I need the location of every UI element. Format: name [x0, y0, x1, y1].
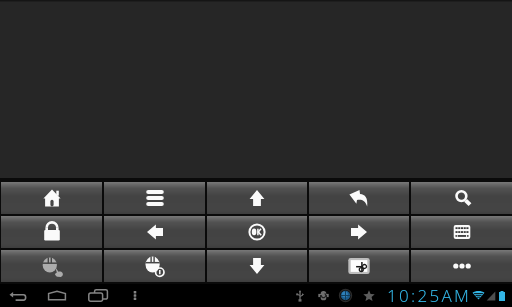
button[interactable]: Recent apps [78, 284, 116, 307]
button[interactable]: Back [309, 182, 409, 214]
button[interactable]: Mouse [1, 250, 102, 282]
button[interactable]: Arrow up [207, 182, 307, 214]
button[interactable]: Menu [104, 182, 205, 214]
button[interactable]: Arrow left [104, 216, 205, 248]
button[interactable]: Screen [309, 250, 409, 282]
button[interactable]: Keyboard [411, 216, 512, 248]
button[interactable]: Back [0, 284, 38, 307]
button[interactable]: Arrow right [309, 216, 409, 248]
button[interactable]: Search [411, 182, 512, 214]
button[interactable]: More options [122, 284, 148, 307]
button[interactable]: Mouse settings [104, 250, 205, 282]
staticText: 10:25AM [387, 284, 472, 307]
button[interactable]: Home [1, 182, 102, 214]
button[interactable]: OK [207, 216, 307, 248]
button[interactable]: Lock [1, 216, 102, 248]
button[interactable]: Home [38, 284, 76, 307]
button[interactable]: More [411, 250, 512, 282]
button[interactable]: Arrow down [207, 250, 307, 282]
